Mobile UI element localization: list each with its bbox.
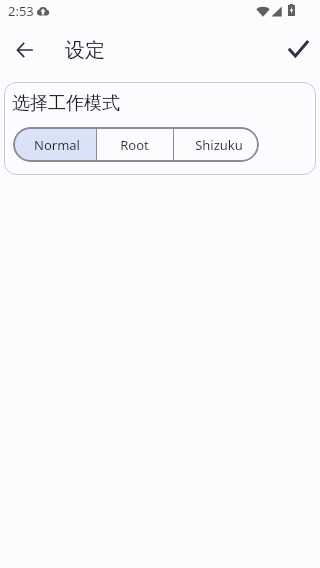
staticText: 选择工作模式 xyxy=(12,92,120,115)
staticText: Root xyxy=(120,136,149,154)
staticText: Normal xyxy=(34,136,80,154)
button[interactable]: Root xyxy=(97,127,173,162)
button[interactable]: Normal xyxy=(13,127,96,162)
staticText: Shizuku xyxy=(195,136,243,154)
staticText: 设定 xyxy=(65,38,105,63)
button[interactable]: Back xyxy=(3,26,47,70)
staticText: 2:53 xyxy=(8,2,34,20)
button[interactable]: Shizuku xyxy=(174,127,259,162)
button[interactable]: Confirm xyxy=(276,26,320,70)
